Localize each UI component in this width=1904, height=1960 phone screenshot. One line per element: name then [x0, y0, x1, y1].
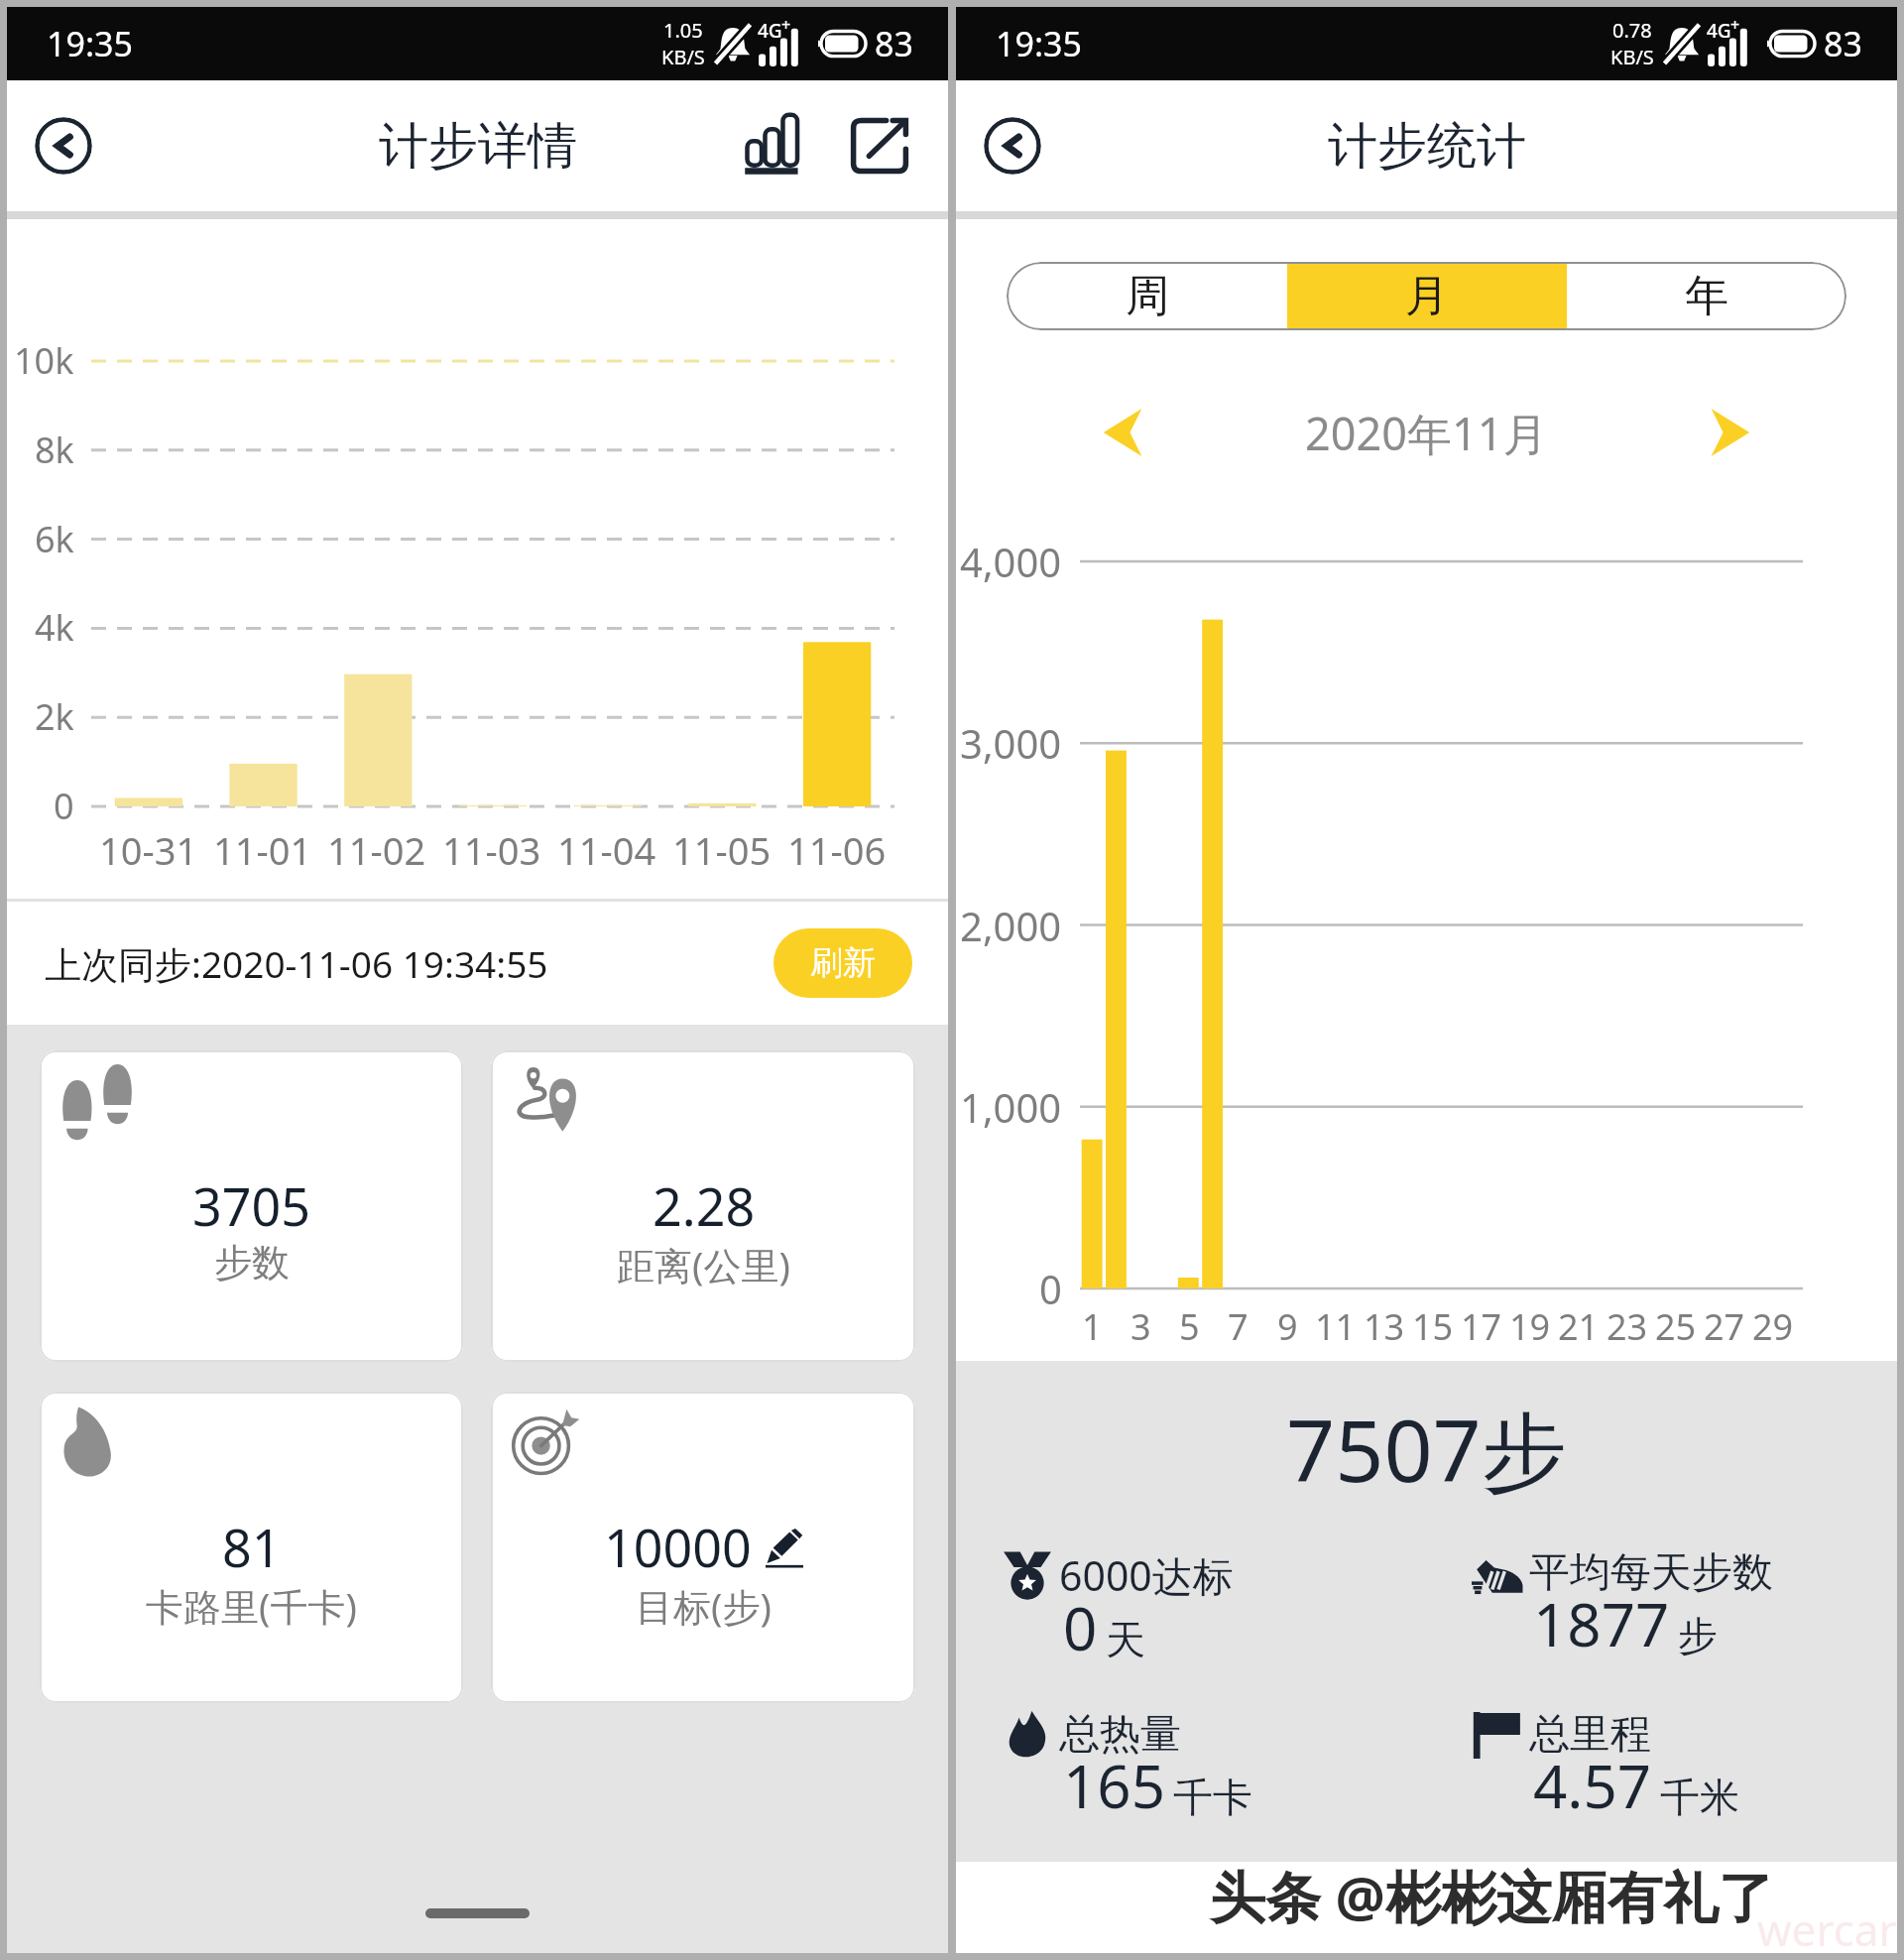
staticText: 17: [1461, 1302, 1502, 1351]
staticText: 11-06: [787, 824, 887, 876]
staticText: 月: [1405, 269, 1449, 323]
button[interactable]: 3705: [40, 1050, 463, 1362]
staticText: 计步详情: [379, 115, 577, 178]
staticText: 21: [1558, 1302, 1600, 1351]
staticText: 7: [1228, 1302, 1249, 1351]
staticText: 2,000: [960, 899, 1062, 952]
staticText: 3705: [192, 1170, 310, 1241]
staticText: 2.28: [653, 1170, 756, 1241]
button[interactable]: Back: [984, 117, 1041, 175]
staticText: 年: [1685, 269, 1728, 323]
staticText: +: [781, 14, 791, 36]
staticText: 0.78: [1612, 17, 1652, 44]
staticText: 平均每天步数: [1529, 1547, 1773, 1599]
staticText: 0: [54, 782, 74, 830]
staticText: 19:35: [47, 21, 133, 66]
staticText: 4k: [35, 603, 74, 652]
staticText: 4,000: [960, 535, 1062, 588]
staticText: 8k: [35, 426, 74, 474]
staticText: 刷新: [810, 942, 876, 984]
staticText: 11: [1315, 1302, 1357, 1351]
staticText: 11-02: [327, 824, 426, 876]
staticText: 10000: [604, 1512, 752, 1582]
staticText: 7507步: [1286, 1391, 1567, 1507]
staticText: KB/S: [661, 44, 705, 70]
button[interactable]: 81: [40, 1392, 463, 1703]
staticText: 0: [1063, 1587, 1098, 1668]
staticText: 卡路里(千卡): [146, 1580, 357, 1632]
staticText: 83: [1824, 21, 1862, 66]
button[interactable]: 月: [1287, 262, 1567, 330]
staticText: 天: [1106, 1615, 1145, 1664]
staticText: 83: [875, 21, 913, 66]
staticText: 4.57: [1533, 1745, 1652, 1826]
staticText: wercar: [1757, 1901, 1897, 1951]
staticText: 2k: [35, 692, 74, 741]
staticText: 步: [1678, 1611, 1718, 1660]
staticText: 27: [1704, 1302, 1745, 1351]
staticText: 3: [1130, 1302, 1151, 1351]
button[interactable]: 2.28: [491, 1050, 915, 1362]
button[interactable]: Share: [842, 108, 917, 184]
staticText: 11-01: [213, 824, 312, 876]
staticText: 1.05: [663, 17, 703, 44]
staticText: 步数: [214, 1239, 290, 1286]
staticText: 计步统计: [1328, 115, 1526, 178]
staticText: 10-31: [99, 824, 198, 876]
staticText: 总里程: [1529, 1709, 1651, 1761]
staticText: 0: [1039, 1262, 1062, 1315]
staticText: 11-04: [557, 824, 656, 876]
staticText: 周: [1126, 269, 1169, 323]
button[interactable]: Next month: [1690, 398, 1769, 467]
button[interactable]: 10000: [491, 1392, 915, 1703]
staticText: 165: [1063, 1745, 1165, 1826]
staticText: 10k: [14, 336, 74, 385]
staticText: 11-03: [442, 824, 541, 876]
staticText: 1,000: [960, 1080, 1062, 1134]
button[interactable]: Previous month: [1084, 398, 1163, 467]
staticText: 15: [1412, 1302, 1454, 1351]
staticText: 目标(步): [636, 1580, 772, 1632]
staticText: 4G: [1707, 18, 1731, 44]
staticText: 距离(公里): [617, 1239, 790, 1290]
staticText: 3,000: [960, 716, 1062, 770]
button[interactable]: Statistics: [737, 108, 812, 184]
staticText: 上次同步:2020-11-06 19:34:55: [45, 938, 548, 989]
staticText: +: [1730, 14, 1740, 36]
staticText: 1877: [1533, 1583, 1670, 1664]
button[interactable]: Back: [35, 117, 92, 175]
staticText: 19: [1509, 1302, 1551, 1351]
staticText: 29: [1752, 1302, 1794, 1351]
staticText: 25: [1655, 1302, 1697, 1351]
staticText: 81: [222, 1512, 282, 1582]
staticText: 6000达标: [1059, 1547, 1234, 1603]
staticText: 头条 @彬彬这厢有礼了: [1210, 1862, 1774, 1933]
staticText: 23: [1606, 1302, 1648, 1351]
button[interactable]: 周: [1007, 262, 1287, 330]
staticText: 4G: [758, 18, 782, 44]
staticText: 2020年11月: [1305, 403, 1548, 463]
staticText: KB/S: [1610, 44, 1654, 70]
staticText: 千卡: [1173, 1773, 1252, 1822]
staticText: 19:35: [996, 21, 1082, 66]
staticText: 6k: [35, 515, 74, 563]
staticText: 13: [1364, 1302, 1405, 1351]
staticText: 5: [1179, 1302, 1200, 1351]
staticText: 1: [1082, 1302, 1103, 1351]
staticText: 9: [1277, 1302, 1298, 1351]
staticText: 11-05: [672, 824, 772, 876]
staticText: 总热量: [1059, 1709, 1181, 1761]
button[interactable]: 刷新: [773, 928, 912, 998]
staticText: 千米: [1660, 1773, 1739, 1822]
button[interactable]: 年: [1567, 262, 1846, 330]
